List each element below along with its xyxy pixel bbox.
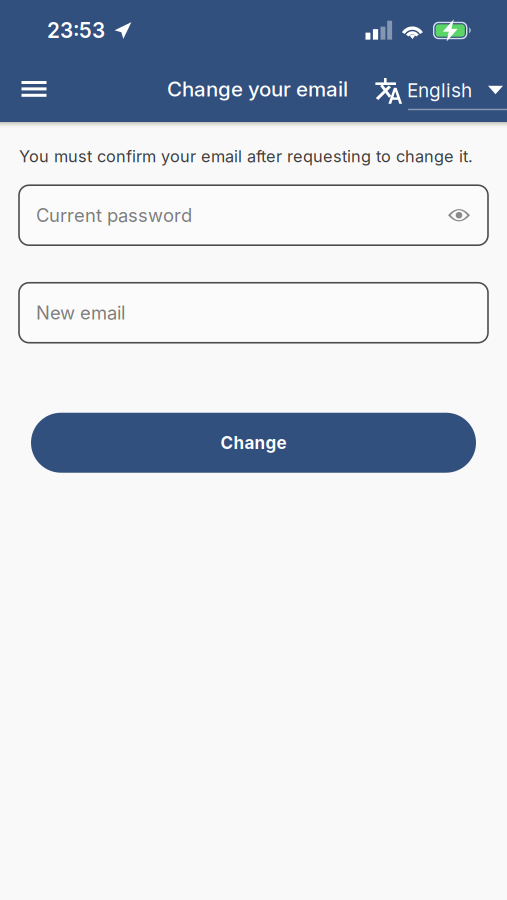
staticText: You must confirm your email after reques… [19,146,473,166]
staticText: Current password [36,204,192,226]
staticText: New email [36,302,125,324]
button[interactable]: Change [31,413,476,473]
button[interactable]: Menu [11,64,57,114]
button[interactable]: Show password [448,207,470,223]
button[interactable]: English [373,77,507,110]
staticText: Change [220,432,286,453]
staticText: Change your email [167,77,348,101]
staticText: English [407,79,472,102]
staticText: 23:53 [47,18,105,43]
